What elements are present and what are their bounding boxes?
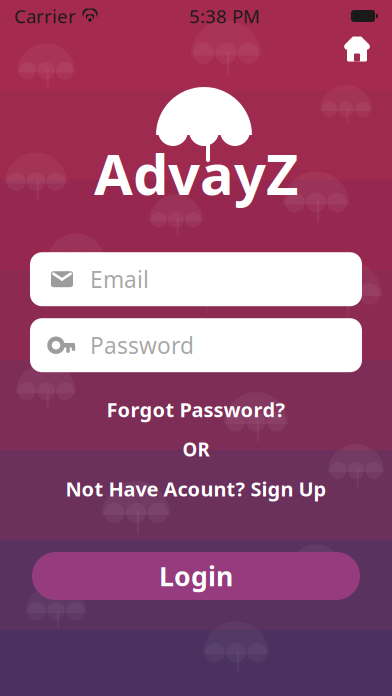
- staticText: Login: [159, 558, 233, 594]
- button[interactable]: Not Have Acount? Sign Up: [53, 468, 338, 510]
- staticText: OR: [182, 437, 209, 462]
- button[interactable]: Forgot Password?: [94, 388, 297, 431]
- staticText: Not Have Acount? Sign Up: [65, 476, 326, 502]
- staticText: Password: [90, 330, 194, 360]
- button[interactable]: Home: [336, 30, 378, 70]
- staticText: Email: [90, 264, 149, 294]
- staticText: AdvayZ: [94, 136, 298, 210]
- staticText: Forgot Password?: [106, 396, 285, 423]
- staticText: Carrier: [14, 4, 76, 28]
- staticText: 5:38 PM: [189, 4, 260, 28]
- button[interactable]: Login: [32, 552, 360, 600]
